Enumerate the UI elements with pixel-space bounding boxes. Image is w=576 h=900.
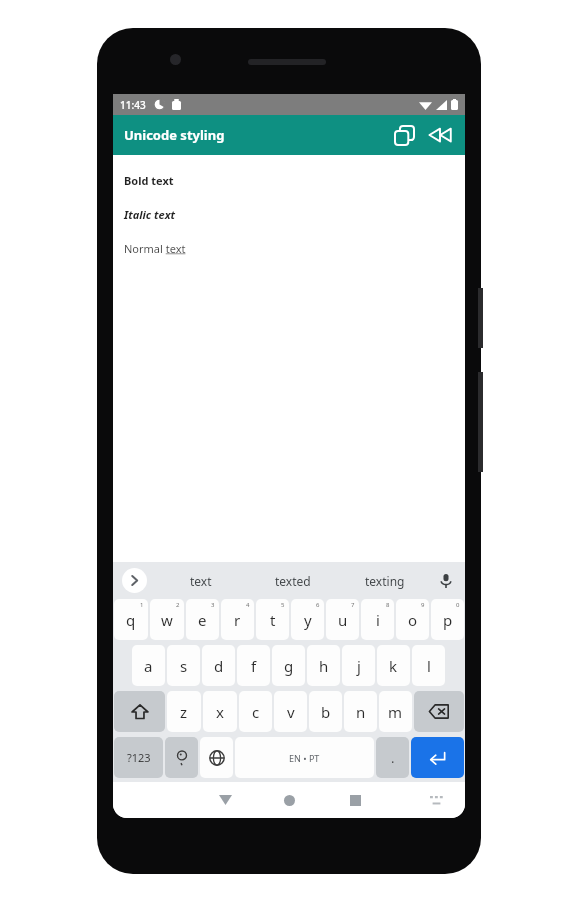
button[interactable]: Home	[271, 782, 307, 818]
button[interactable]: texting	[339, 562, 431, 599]
staticText: 6	[316, 601, 320, 609]
button[interactable]: y	[291, 599, 324, 640]
staticText: 9	[421, 601, 425, 609]
button[interactable]: f	[237, 645, 270, 686]
button[interactable]: r	[221, 599, 254, 640]
button[interactable]: s	[167, 645, 200, 686]
button[interactable]: l	[412, 645, 445, 686]
button[interactable]: t	[256, 599, 289, 640]
button[interactable]: Shift	[114, 691, 165, 732]
staticText: m	[388, 702, 403, 722]
button[interactable]: h	[307, 645, 340, 686]
staticText: k	[389, 656, 398, 676]
button[interactable]: Emoji	[165, 737, 198, 778]
staticText: 1	[140, 601, 144, 609]
staticText: x	[216, 702, 224, 722]
staticText: s	[180, 656, 188, 676]
button[interactable]: Switch keyboard	[421, 785, 451, 815]
staticText: v	[287, 702, 295, 722]
button[interactable]: d	[202, 645, 235, 686]
staticText: 3	[211, 601, 215, 609]
staticText: q	[126, 610, 136, 630]
button[interactable]: g	[272, 645, 305, 686]
staticText: j	[357, 656, 361, 676]
button[interactable]: Recents	[337, 782, 373, 818]
button[interactable]: More suggestions	[122, 568, 147, 593]
button[interactable]: v	[274, 691, 307, 732]
button[interactable]: x	[203, 691, 237, 732]
staticText: z	[180, 702, 188, 722]
button[interactable]: j	[342, 645, 375, 686]
staticText: texted	[275, 573, 311, 589]
staticText: i	[376, 610, 380, 630]
button[interactable]: k	[377, 645, 410, 686]
staticText: t	[270, 610, 276, 630]
staticText: n	[356, 702, 366, 722]
staticText: Normal text	[124, 241, 186, 256]
button[interactable]: n	[344, 691, 377, 732]
staticText: 5	[281, 601, 285, 609]
staticText: 2	[176, 601, 180, 609]
staticText: .	[391, 749, 395, 767]
staticText: 4	[246, 601, 250, 609]
staticText: c	[252, 702, 260, 722]
staticText: r	[234, 610, 241, 630]
button[interactable]: Copy	[387, 118, 421, 152]
staticText: 8	[386, 601, 390, 609]
button[interactable]: Voice input	[433, 568, 459, 594]
staticText: 7	[351, 601, 355, 609]
staticText: Bold text	[124, 173, 174, 188]
button[interactable]: text	[155, 562, 247, 599]
staticText: f	[251, 656, 257, 676]
button[interactable]: Backspace	[414, 691, 464, 732]
button[interactable]: Symbols	[114, 737, 163, 778]
staticText: EN • PT	[289, 752, 320, 764]
button[interactable]: Hide keyboard	[207, 782, 243, 818]
button[interactable]: p	[431, 599, 464, 640]
button[interactable]: m	[379, 691, 412, 732]
staticText: Italic text	[124, 207, 176, 222]
button[interactable]: o	[396, 599, 429, 640]
staticText: h	[319, 656, 329, 676]
staticText: 11:43	[120, 98, 146, 112]
button[interactable]: EN • PT	[235, 737, 374, 778]
button[interactable]: z	[167, 691, 201, 732]
staticText: o	[408, 610, 418, 630]
staticText: u	[338, 610, 348, 630]
button[interactable]: u	[326, 599, 359, 640]
staticText: 0	[456, 601, 460, 609]
button[interactable]: Change language	[200, 737, 233, 778]
staticText: Unicode styling	[124, 126, 225, 144]
staticText: p	[443, 610, 453, 630]
button[interactable]: texted	[247, 562, 339, 599]
staticText: a	[144, 656, 153, 676]
button[interactable]: i	[361, 599, 394, 640]
staticText: ?123	[127, 750, 151, 765]
staticText: y	[304, 610, 312, 630]
staticText: d	[214, 656, 224, 676]
button[interactable]: Rewind	[423, 118, 457, 152]
staticText: l	[427, 656, 431, 676]
staticText: g	[284, 656, 294, 676]
staticText: w	[161, 610, 173, 630]
staticText: b	[321, 702, 331, 722]
button[interactable]: a	[132, 645, 165, 686]
button[interactable]: w	[150, 599, 184, 640]
staticText: e	[198, 610, 207, 630]
staticText: texting	[365, 573, 405, 589]
button[interactable]: b	[309, 691, 342, 732]
button[interactable]: Period	[376, 737, 409, 778]
staticText: text	[190, 573, 212, 589]
button[interactable]: e	[186, 599, 219, 640]
button[interactable]: c	[239, 691, 272, 732]
button[interactable]: Enter	[411, 737, 464, 778]
button[interactable]: q	[114, 599, 148, 640]
